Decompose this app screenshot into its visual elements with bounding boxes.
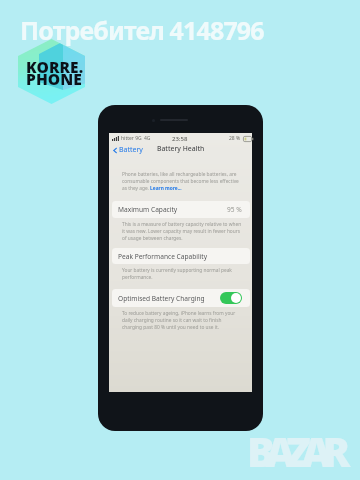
- staticText: Потребител 4148796: [20, 13, 264, 47]
- staticText: To reduce battery ageing, iPhone learns …: [122, 310, 242, 331]
- staticText: Battery Health: [157, 144, 205, 153]
- staticText: PHONE: [26, 68, 82, 89]
- button[interactable]: Maximum Capacity: [112, 201, 250, 218]
- staticText: BAZAR: [247, 423, 341, 479]
- staticText: 4G: [144, 135, 151, 142]
- staticText: Phone batteries, like all rechargeable b…: [122, 171, 242, 192]
- staticText: Your battery is currently supporting nor…: [122, 267, 242, 281]
- staticText: Battery: [119, 145, 143, 155]
- staticText: Peak Performance Capability: [118, 252, 208, 261]
- staticText: 23:58: [172, 135, 188, 143]
- staticText: KORRE.: [26, 56, 84, 77]
- button[interactable]: Optimised Battery Charging: [112, 289, 250, 307]
- button[interactable]: Battery: [113, 145, 143, 155]
- staticText: 28 %: [229, 135, 241, 142]
- staticText: This is a measure of battery capacity re…: [122, 221, 242, 242]
- staticText: Optimised Battery Charging: [118, 294, 205, 303]
- staticText: hitter 9G: [121, 135, 142, 142]
- button[interactable]: Peak Performance Capability: [112, 248, 250, 264]
- staticText: 95 %: [227, 205, 242, 214]
- staticText: Maximum Capacity: [118, 205, 178, 214]
